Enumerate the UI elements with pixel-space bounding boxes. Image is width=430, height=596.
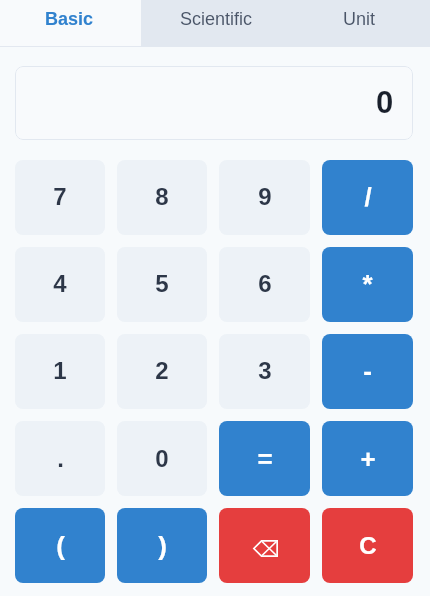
staticText: Basic: [45, 9, 94, 29]
staticText: /: [364, 182, 372, 211]
button[interactable]: Basic: [0, 0, 144, 47]
staticText: C: [359, 532, 377, 559]
button[interactable]: .: [15, 421, 105, 496]
button[interactable]: +: [322, 421, 413, 496]
button[interactable]: =: [219, 421, 310, 496]
staticText: Unit: [343, 9, 376, 29]
button[interactable]: Backspace: [219, 508, 310, 583]
staticText: 7: [53, 183, 67, 210]
button[interactable]: 9: [219, 160, 310, 235]
button[interactable]: (: [15, 508, 105, 583]
button[interactable]: -: [322, 334, 413, 409]
button[interactable]: C: [322, 508, 413, 583]
staticText: *: [362, 269, 373, 298]
staticText: 8: [155, 183, 169, 210]
button[interactable]: 2: [117, 334, 207, 409]
button[interactable]: 4: [15, 247, 105, 322]
staticText: =: [257, 444, 273, 473]
button[interactable]: 3: [219, 334, 310, 409]
button[interactable]: 8: [117, 160, 207, 235]
staticText: -: [363, 356, 372, 385]
staticText: .: [57, 445, 64, 472]
staticText: 1: [53, 357, 67, 384]
staticText: 5: [155, 270, 169, 297]
button[interactable]: Unit: [287, 0, 430, 47]
button[interactable]: 7: [15, 160, 105, 235]
staticText: 3: [258, 357, 272, 384]
button[interactable]: Scientific: [144, 0, 287, 47]
staticText: 2: [155, 357, 169, 384]
staticText: 0: [155, 445, 169, 472]
button[interactable]: 0: [117, 421, 207, 496]
staticText: Scientific: [180, 9, 253, 29]
staticText: 6: [258, 270, 272, 297]
button[interactable]: 5: [117, 247, 207, 322]
staticText: (: [56, 531, 65, 560]
button[interactable]: 1: [15, 334, 105, 409]
staticText: ): [158, 531, 167, 560]
button[interactable]: ): [117, 508, 207, 583]
button[interactable]: /: [322, 160, 413, 235]
staticText: 4: [53, 270, 67, 297]
button[interactable]: 6: [219, 247, 310, 322]
staticText: 9: [258, 183, 272, 210]
staticText: +: [360, 444, 376, 473]
button[interactable]: *: [322, 247, 413, 322]
staticText: 0: [376, 85, 394, 120]
